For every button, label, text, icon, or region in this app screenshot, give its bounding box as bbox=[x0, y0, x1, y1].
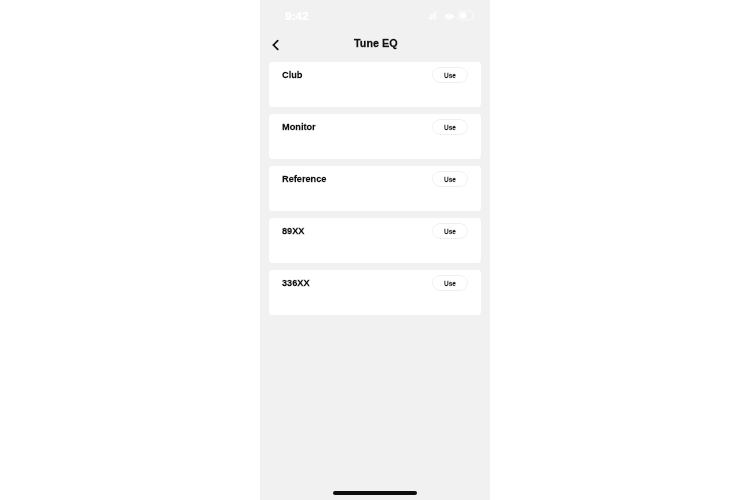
staticText: 89XX bbox=[282, 226, 305, 236]
button[interactable]: Use bbox=[432, 223, 468, 239]
staticText: Club bbox=[282, 70, 303, 80]
staticText: 336XX bbox=[282, 278, 310, 288]
button[interactable]: Back bbox=[263, 33, 287, 57]
staticText: Use bbox=[444, 228, 456, 235]
staticText: Tune EQ bbox=[354, 37, 398, 49]
button[interactable]: Use bbox=[432, 275, 468, 291]
button[interactable]: 336XX bbox=[269, 270, 481, 315]
staticText: Use bbox=[444, 124, 456, 131]
staticText: Use bbox=[444, 176, 456, 183]
staticText: Use bbox=[444, 280, 456, 287]
staticText: Monitor bbox=[282, 122, 316, 132]
button[interactable]: Use bbox=[432, 119, 468, 135]
button[interactable]: Reference bbox=[269, 166, 481, 211]
button[interactable]: Use bbox=[432, 171, 468, 187]
button[interactable]: Club bbox=[269, 62, 481, 107]
staticText: Use bbox=[444, 72, 456, 79]
button[interactable]: Monitor bbox=[269, 114, 481, 159]
staticText: Reference bbox=[282, 174, 327, 184]
button[interactable]: 89XX bbox=[269, 218, 481, 263]
button[interactable]: Use bbox=[432, 67, 468, 83]
staticText: 9:42 bbox=[285, 9, 309, 22]
